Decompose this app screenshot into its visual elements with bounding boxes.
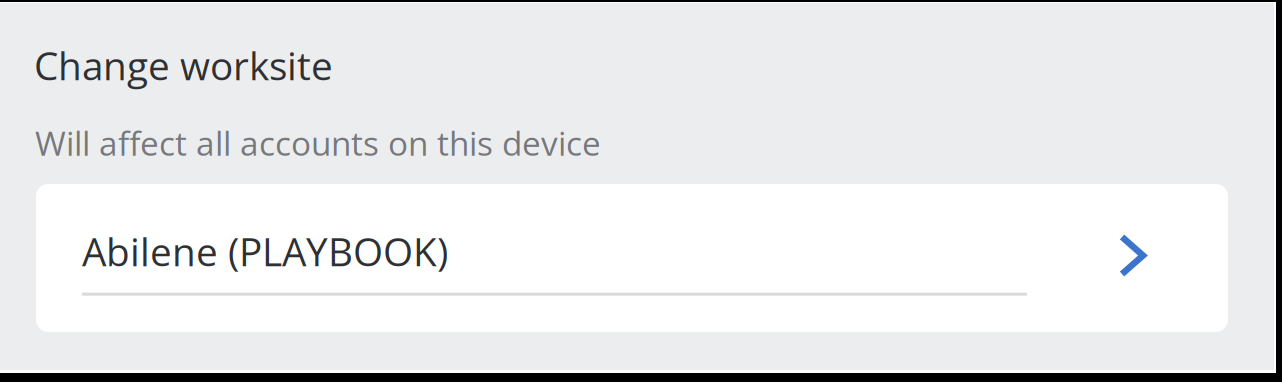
staticText: Abilene (PLAYBOOK) xyxy=(82,225,448,278)
staticText: Change worksite xyxy=(34,39,333,92)
button[interactable]: Change worksite, Abilene (PLAYBOOK) xyxy=(36,184,1228,332)
staticText: Will affect all accounts on this device xyxy=(35,120,601,165)
